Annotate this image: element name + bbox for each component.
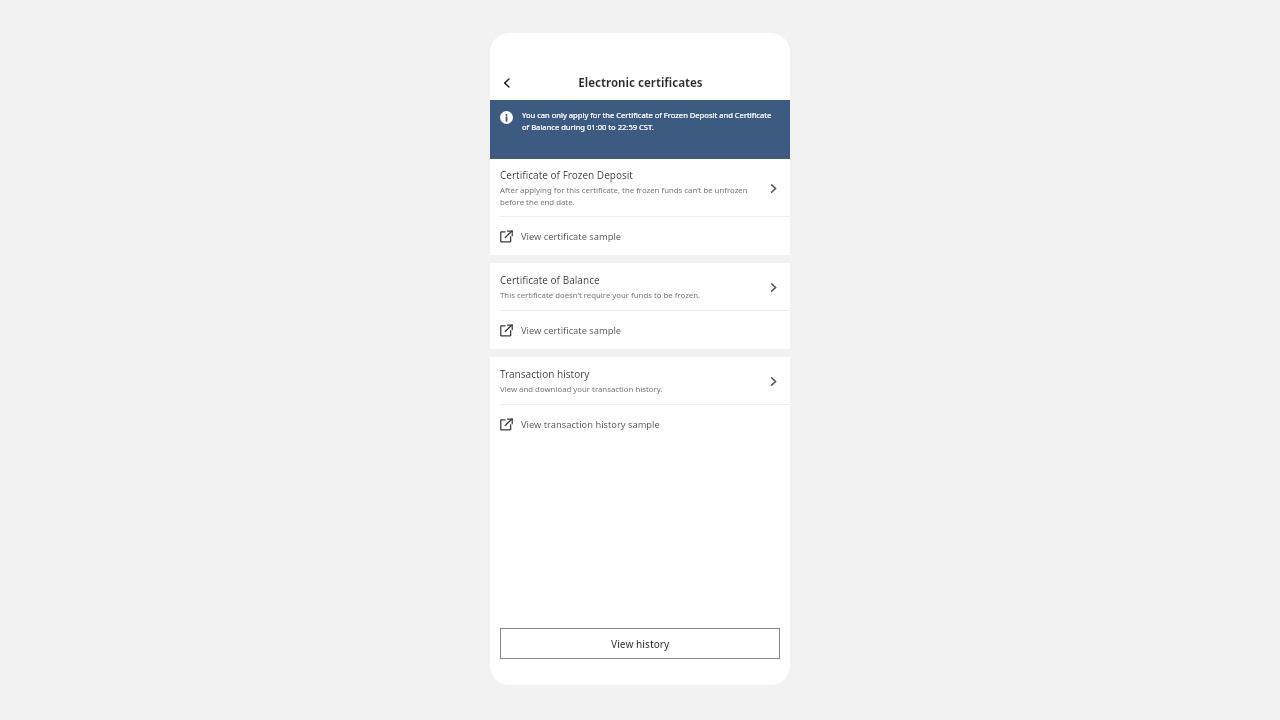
staticText: View certificate sample bbox=[521, 324, 622, 337]
staticText: You can only apply for the Certificate o… bbox=[522, 110, 776, 132]
button[interactable]: Certificate of Balance bbox=[490, 263, 790, 310]
button[interactable]: Transaction history bbox=[490, 357, 790, 404]
staticText: View history bbox=[611, 637, 670, 651]
staticText: View and download your transaction histo… bbox=[500, 384, 663, 395]
staticText: View certificate sample bbox=[521, 230, 622, 243]
button[interactable]: View transaction history sample bbox=[490, 405, 790, 443]
staticText: Electronic certificates bbox=[578, 75, 703, 91]
button[interactable]: View certificate sample bbox=[490, 311, 790, 349]
staticText: View transaction history sample bbox=[521, 418, 660, 431]
staticText: Transaction history bbox=[500, 367, 590, 381]
button[interactable]: View history bbox=[500, 628, 780, 659]
button[interactable]: View certificate sample bbox=[490, 217, 790, 255]
staticText: This certificate doesn’t require your fu… bbox=[500, 290, 701, 301]
staticText: Certificate of Balance bbox=[500, 273, 600, 287]
staticText: After applying for this certificate, the… bbox=[500, 185, 758, 207]
button[interactable]: Back bbox=[490, 66, 524, 100]
button[interactable]: Certificate of Frozen Deposit bbox=[490, 159, 790, 216]
staticText: Certificate of Frozen Deposit bbox=[500, 168, 633, 182]
